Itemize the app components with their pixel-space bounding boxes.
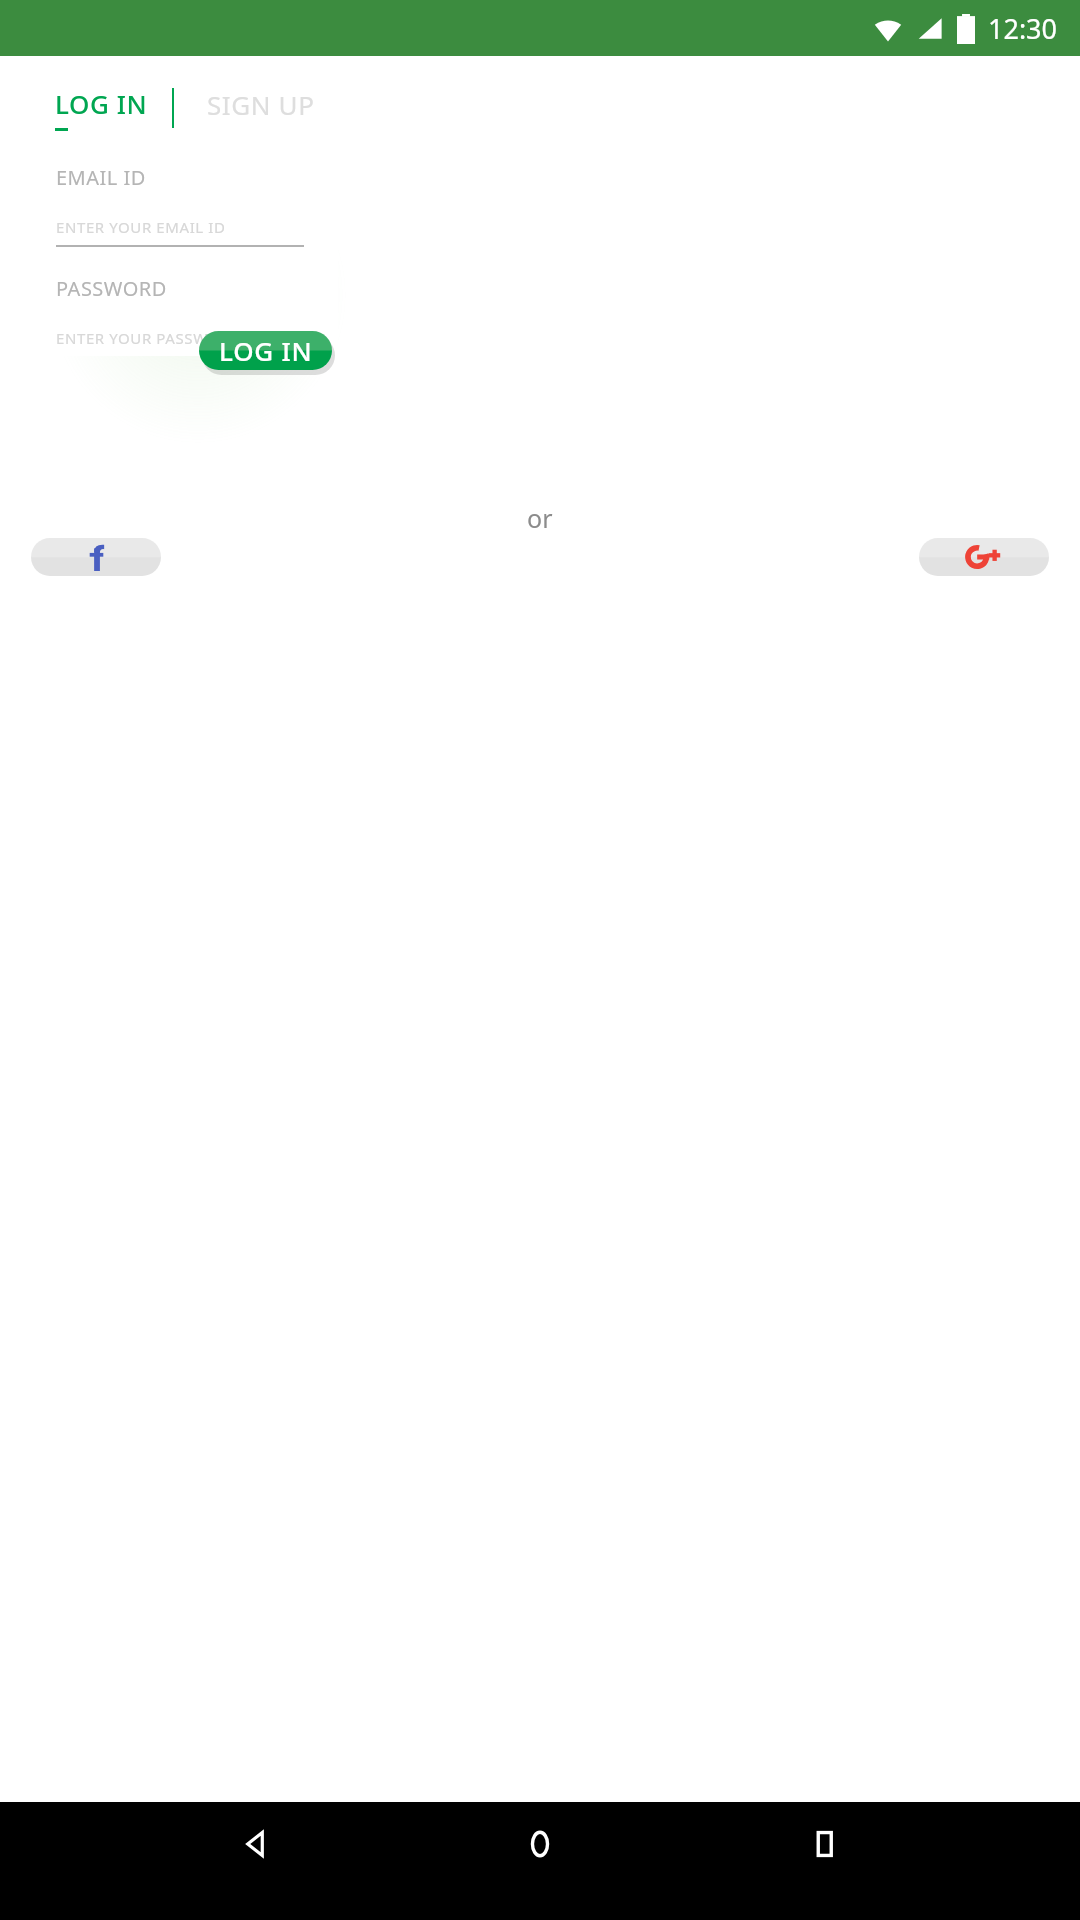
staticText: LOG IN [219, 333, 313, 368]
staticText: EMAIL ID [56, 164, 146, 191]
button[interactable]: Recent apps [795, 1814, 855, 1874]
staticText: LOG IN [55, 86, 148, 121]
staticText: PASSWORD [56, 275, 167, 302]
button[interactable]: Sign in with Google Plus [919, 538, 1049, 576]
staticText: or [527, 501, 553, 535]
button[interactable]: LOG IN [199, 331, 332, 370]
staticText: SIGN UP [207, 87, 315, 122]
button[interactable]: Sign in with Facebook [31, 538, 161, 576]
button[interactable]: SIGN UP [174, 83, 338, 133]
staticText: ENTER YOUR EMAIL ID [56, 217, 226, 237]
button[interactable]: Back [225, 1814, 285, 1874]
staticText: ENTER YOUR PASSWORD [56, 328, 242, 348]
staticText: 12:30 [988, 10, 1058, 47]
button[interactable]: LOG IN [22, 83, 172, 133]
button[interactable]: Home [510, 1814, 570, 1874]
